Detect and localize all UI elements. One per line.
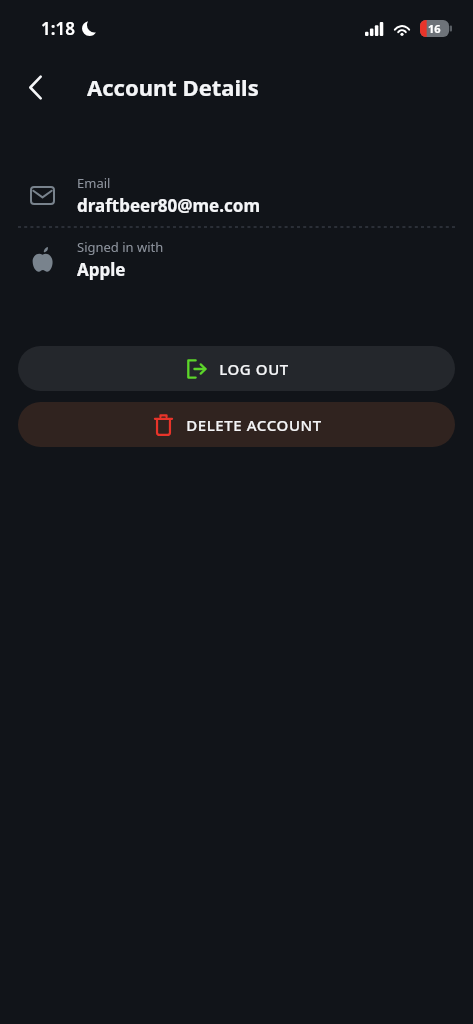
- staticText: Signed in with: [77, 238, 164, 256]
- button[interactable]: Signed in with: [0, 228, 473, 290]
- staticText: LOG OUT: [219, 359, 289, 379]
- staticText: DELETE ACCOUNT: [186, 415, 322, 435]
- staticText: Account Details: [87, 72, 259, 102]
- button[interactable]: Back: [13, 65, 57, 109]
- staticText: 16: [428, 21, 441, 36]
- staticText: draftbeer80@me.com: [77, 194, 260, 217]
- staticText: Email: [77, 174, 111, 192]
- button[interactable]: Email: [0, 164, 473, 226]
- staticText: 1:18: [41, 17, 75, 40]
- button[interactable]: LOG OUT: [18, 346, 455, 391]
- button[interactable]: DELETE ACCOUNT: [18, 402, 455, 447]
- staticText: Apple: [77, 258, 126, 281]
